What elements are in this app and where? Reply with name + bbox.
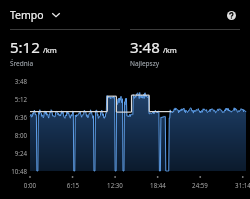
button[interactable]: 3:48: [130, 29, 240, 68]
staticText: /km: [43, 45, 57, 55]
staticText: 6:36: [0, 113, 27, 121]
staticText: /km: [163, 45, 177, 55]
staticText: 0:00: [16, 181, 44, 189]
staticText: 6:15: [59, 181, 87, 189]
staticText: 3:48: [130, 37, 160, 57]
button[interactable]: Help: [222, 6, 240, 24]
staticText: 5:12: [10, 37, 40, 57]
staticText: 24:59: [186, 181, 214, 189]
staticText: 10:48: [0, 167, 27, 175]
staticText: 31:14: [229, 181, 250, 189]
staticText: 8:00: [0, 131, 27, 139]
button[interactable]: 5:12: [10, 29, 120, 68]
staticText: 12:30: [101, 181, 129, 189]
staticText: 9:24: [0, 149, 27, 157]
staticText: Średnia: [10, 59, 34, 68]
staticText: 3:48: [0, 77, 27, 85]
staticText: 18:44: [144, 181, 172, 189]
staticText: Tempo: [10, 8, 44, 22]
button[interactable]: Tempo: [10, 6, 65, 24]
staticText: Najlepszy: [130, 59, 160, 68]
staticText: 5:12: [0, 95, 27, 103]
